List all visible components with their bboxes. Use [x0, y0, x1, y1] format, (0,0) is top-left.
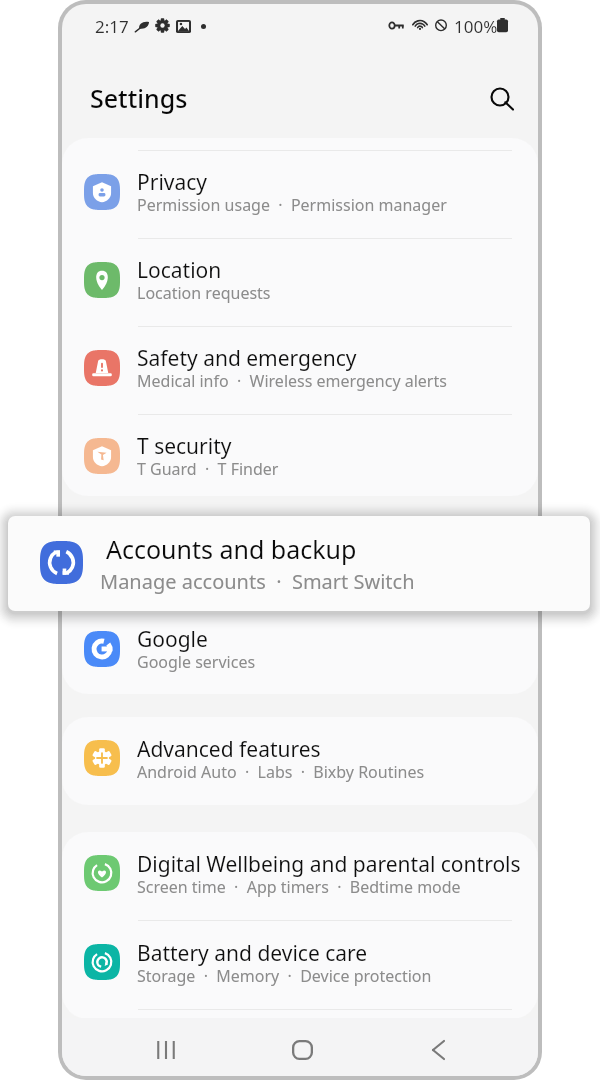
- staticText: Location requests: [137, 282, 271, 304]
- staticText: 2:17: [95, 15, 129, 38]
- staticText: Android Auto · Labs · Bixby Routines: [137, 761, 425, 783]
- button[interactable]: Location: [62, 239, 538, 326]
- button[interactable]: Digital Wellbeing and parental controls: [62, 832, 538, 920]
- staticText: Privacy: [137, 168, 208, 197]
- staticText: Permission usage · Permission manager: [137, 194, 447, 216]
- button[interactable]: Accounts and backup: [8, 516, 590, 611]
- staticText: Google services: [137, 651, 256, 673]
- button[interactable]: Battery and device care: [62, 921, 538, 1009]
- button[interactable]: Privacy: [62, 151, 538, 238]
- staticText: Settings: [90, 81, 188, 115]
- button[interactable]: Google: [62, 608, 538, 694]
- button[interactable]: Recent apps: [142, 1026, 190, 1074]
- staticText: Accounts and backup: [106, 532, 357, 566]
- button[interactable]: Advanced features: [62, 717, 538, 805]
- staticText: Battery and device care: [137, 939, 368, 968]
- staticText: Storage · Memory · Device protection: [137, 965, 432, 987]
- staticText: 100%: [454, 15, 498, 38]
- staticText: Advanced features: [137, 735, 321, 764]
- staticText: Screen time · App timers · Bedtime mode: [137, 876, 461, 898]
- button[interactable]: Search: [478, 75, 526, 123]
- button[interactable]: Safety and emergency: [62, 327, 538, 414]
- staticText: Safety and emergency: [137, 344, 357, 373]
- staticText: Location: [137, 256, 222, 285]
- staticText: T Guard · T Finder: [137, 458, 279, 480]
- button[interactable]: Home: [278, 1026, 326, 1074]
- button[interactable]: T security: [62, 415, 538, 496]
- staticText: Digital Wellbeing and parental controls: [137, 850, 521, 879]
- button[interactable]: Back: [414, 1026, 462, 1074]
- staticText: Google: [137, 625, 208, 654]
- staticText: Manage accounts · Smart Switch: [100, 568, 415, 595]
- staticText: Medical info · Wireless emergency alerts: [137, 370, 447, 392]
- staticText: T security: [137, 432, 232, 461]
